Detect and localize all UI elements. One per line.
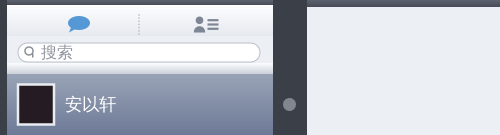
button[interactable]: Contacts (189, 7, 223, 33)
button[interactable]: More (122, 7, 156, 33)
staticText: 安以轩 (65, 94, 116, 115)
button[interactable]: 安以轩 (7, 74, 273, 135)
button[interactable]: 搜索 (18, 43, 260, 62)
staticText: 搜索 (41, 43, 73, 62)
button[interactable]: Messages (62, 7, 96, 33)
